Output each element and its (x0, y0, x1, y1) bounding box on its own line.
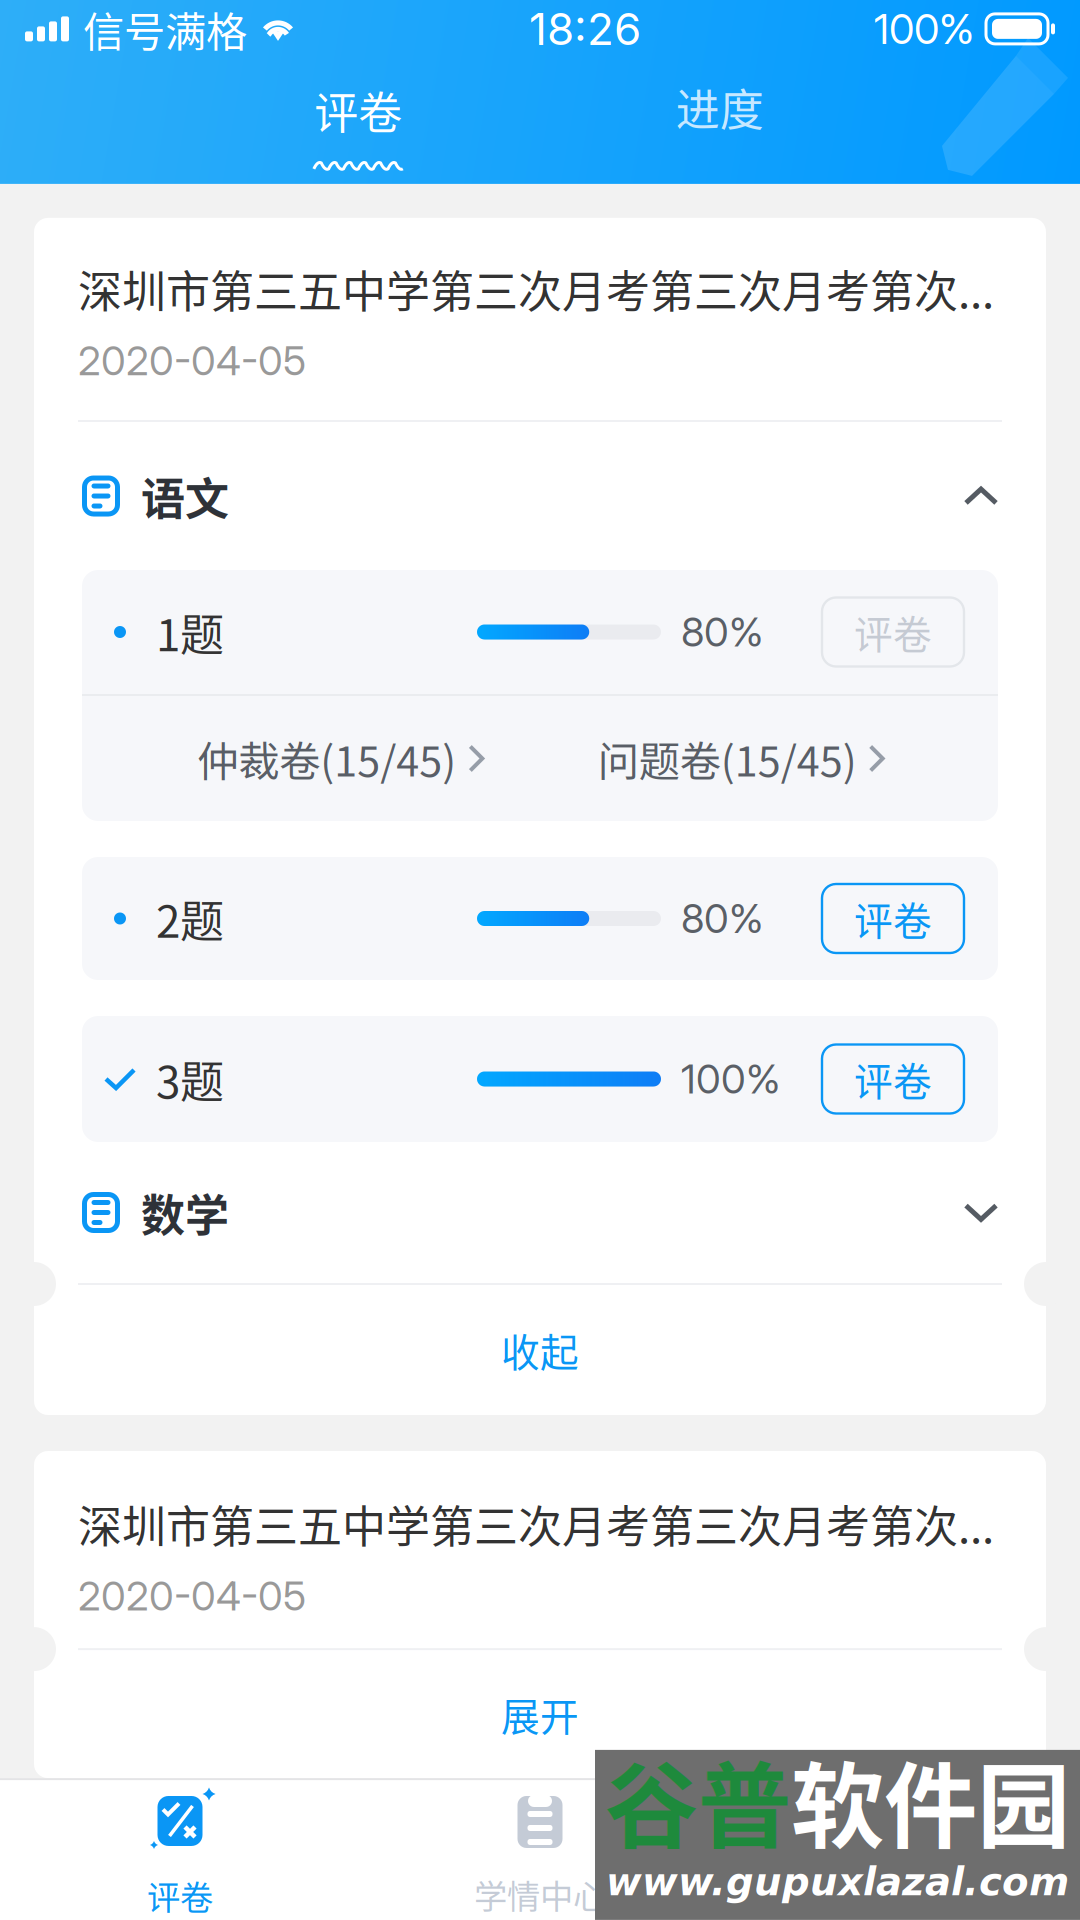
staticText: 评卷 (854, 1051, 932, 1107)
staticText: 1题 (156, 600, 224, 664)
staticText: 18:26 (529, 2, 641, 55)
button[interactable]: 评卷 (0, 1793, 360, 1919)
button[interactable]: 语文 (34, 422, 1046, 570)
staticText: 评卷 (314, 78, 402, 142)
staticText: 问题卷(15/45) (598, 729, 857, 788)
button[interactable]: 收起 (34, 1285, 1046, 1415)
staticText: 100% (681, 1055, 780, 1103)
button[interactable]: 评卷 (238, 58, 478, 184)
button[interactable]: 评卷 (822, 884, 964, 953)
staticText: 信号满格 (83, 0, 247, 59)
staticText: 2020-04-05 (78, 337, 306, 385)
staticText: 仲裁卷(15/45) (197, 729, 456, 788)
staticText: 2020-04-05 (78, 1572, 306, 1620)
button[interactable]: 进度 (600, 58, 840, 184)
staticText: www.gupuxlazal.com (606, 1859, 1069, 1904)
button[interactable]: 评卷 (822, 1044, 964, 1113)
staticText: 语文 (141, 464, 229, 528)
button[interactable]: 学情中心 (360, 1794, 720, 1918)
staticText: 评卷 (147, 1871, 213, 1919)
staticText: 数学 (141, 1181, 229, 1244)
staticText: 80% (681, 608, 763, 656)
button[interactable]: 仲裁卷(15/45) (197, 729, 482, 788)
button[interactable]: 展开 (34, 1650, 1046, 1778)
staticText: 学情中心 (474, 1870, 606, 1918)
button[interactable]: 数学 (34, 1142, 1046, 1283)
staticText: 100% (874, 4, 974, 54)
staticText: 2题 (156, 887, 224, 950)
staticText: 深圳市第三五中学第三次月考第三次月考第次... (78, 1492, 994, 1556)
staticText: 谷普 (605, 1732, 791, 1867)
button[interactable]: 问题卷(15/45) (598, 729, 883, 788)
button[interactable]: 我的 (720, 1794, 1080, 1918)
staticText: 软件园 (791, 1732, 1070, 1867)
staticText: 收起 (501, 1322, 579, 1378)
staticText: 评卷 (854, 890, 932, 946)
staticText: 展开 (501, 1686, 579, 1742)
staticText: 我的 (867, 1870, 933, 1918)
button[interactable]: 评卷 (822, 597, 964, 666)
staticText: 80% (681, 894, 763, 943)
staticText: 评卷 (854, 604, 932, 660)
staticText: 深圳市第三五中学第三次月考第三次月考第次... (78, 257, 994, 321)
staticText: 进度 (676, 75, 764, 139)
staticText: 3题 (156, 1047, 224, 1111)
